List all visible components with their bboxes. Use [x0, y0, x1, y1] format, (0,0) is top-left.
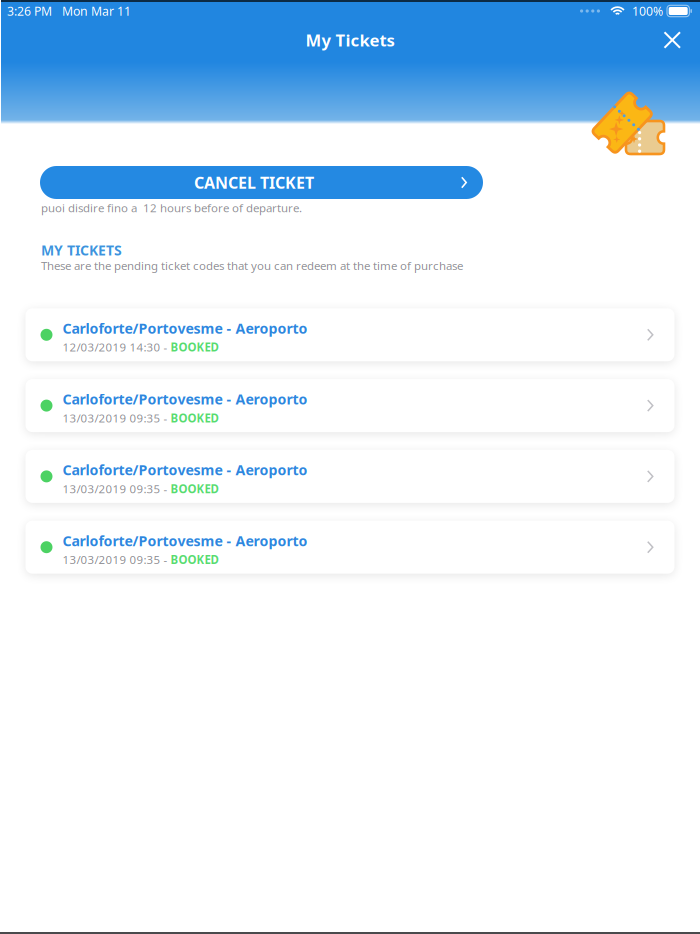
staticText: 12/03/2019 14:30 -: [62, 339, 170, 355]
button[interactable]: Close: [652, 20, 692, 60]
staticText: BOOKED: [170, 339, 218, 355]
staticText: Carloforte/Portovesme - Aeroporto: [62, 389, 307, 409]
staticText: 13/03/2019 09:35 -: [62, 552, 170, 567]
staticText: 3:26 PM: [7, 3, 52, 19]
button[interactable]: Carloforte/Portovesme - Aeroporto: [25, 379, 674, 432]
staticText: puoi disdire fino a 12 hours before of d…: [41, 200, 302, 216]
staticText: My Tickets: [305, 29, 394, 51]
staticText: 13/03/2019 09:35 -: [62, 481, 170, 497]
staticText: Carloforte/Portovesme - Aeroporto: [62, 319, 307, 338]
staticText: Mon Mar 11: [62, 3, 131, 19]
staticText: BOOKED: [170, 481, 218, 497]
staticText: BOOKED: [170, 410, 218, 426]
staticText: Carloforte/Portovesme - Aeroporto: [62, 460, 307, 479]
button[interactable]: Carloforte/Portovesme - Aeroporto: [25, 450, 674, 503]
button[interactable]: Carloforte/Portovesme - Aeroporto: [25, 521, 674, 574]
staticText: BOOKED: [170, 552, 218, 567]
button[interactable]: Carloforte/Portovesme - Aeroporto: [25, 308, 674, 361]
staticText: CANCEL TICKET: [194, 172, 314, 193]
staticText: Carloforte/Portovesme - Aeroporto: [62, 531, 307, 550]
staticText: 100%: [632, 3, 663, 19]
button[interactable]: CANCEL TICKET: [40, 166, 483, 199]
staticText: MY TICKETS: [41, 241, 122, 260]
staticText: These are the pending ticket codes that …: [41, 258, 463, 273]
staticText: 13/03/2019 09:35 -: [62, 410, 170, 426]
